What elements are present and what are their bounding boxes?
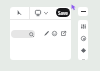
button[interactable]: Change device <box>42 9 49 16</box>
button[interactable]: Emoji <box>51 30 58 37</box>
button[interactable]: Color <box>80 35 87 42</box>
staticText: Save <box>58 10 68 16</box>
button[interactable]: Components <box>80 47 87 54</box>
button[interactable]: Draw <box>43 30 50 37</box>
button[interactable]: Preview device <box>33 8 42 17</box>
button[interactable]: Adjust <box>80 23 87 30</box>
button[interactable]: Save <box>56 8 70 17</box>
button[interactable]: More <box>81 57 85 60</box>
button[interactable]: Share <box>60 30 67 37</box>
button[interactable]: Select tool <box>15 8 24 17</box>
button[interactable]: Layers <box>78 7 88 16</box>
button[interactable]: Search <box>11 30 35 38</box>
